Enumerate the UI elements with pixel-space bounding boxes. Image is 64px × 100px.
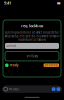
staticText: Message	[9, 87, 20, 91]
staticText: 9:41	[4, 0, 11, 6]
staticText: ▮▮▮	[57, 1, 60, 4]
staticText: req lockbox	[21, 23, 43, 28]
staticText: Lorem ipsum dolor sit amet consectetur	[5, 31, 59, 34]
staticText: pending	[45, 63, 58, 67]
staticText: verify key	[26, 54, 37, 58]
button[interactable]: Dictate	[52, 87, 55, 91]
staticText: unlock	[6, 44, 15, 48]
staticText: incididunt ut labore	[17, 38, 46, 41]
staticText: ready	[10, 63, 18, 67]
button[interactable]: Send	[57, 87, 60, 91]
button[interactable]: Add attachment	[4, 87, 8, 91]
staticText: adipiscing elit sed do eiusmod tempor	[4, 34, 59, 38]
